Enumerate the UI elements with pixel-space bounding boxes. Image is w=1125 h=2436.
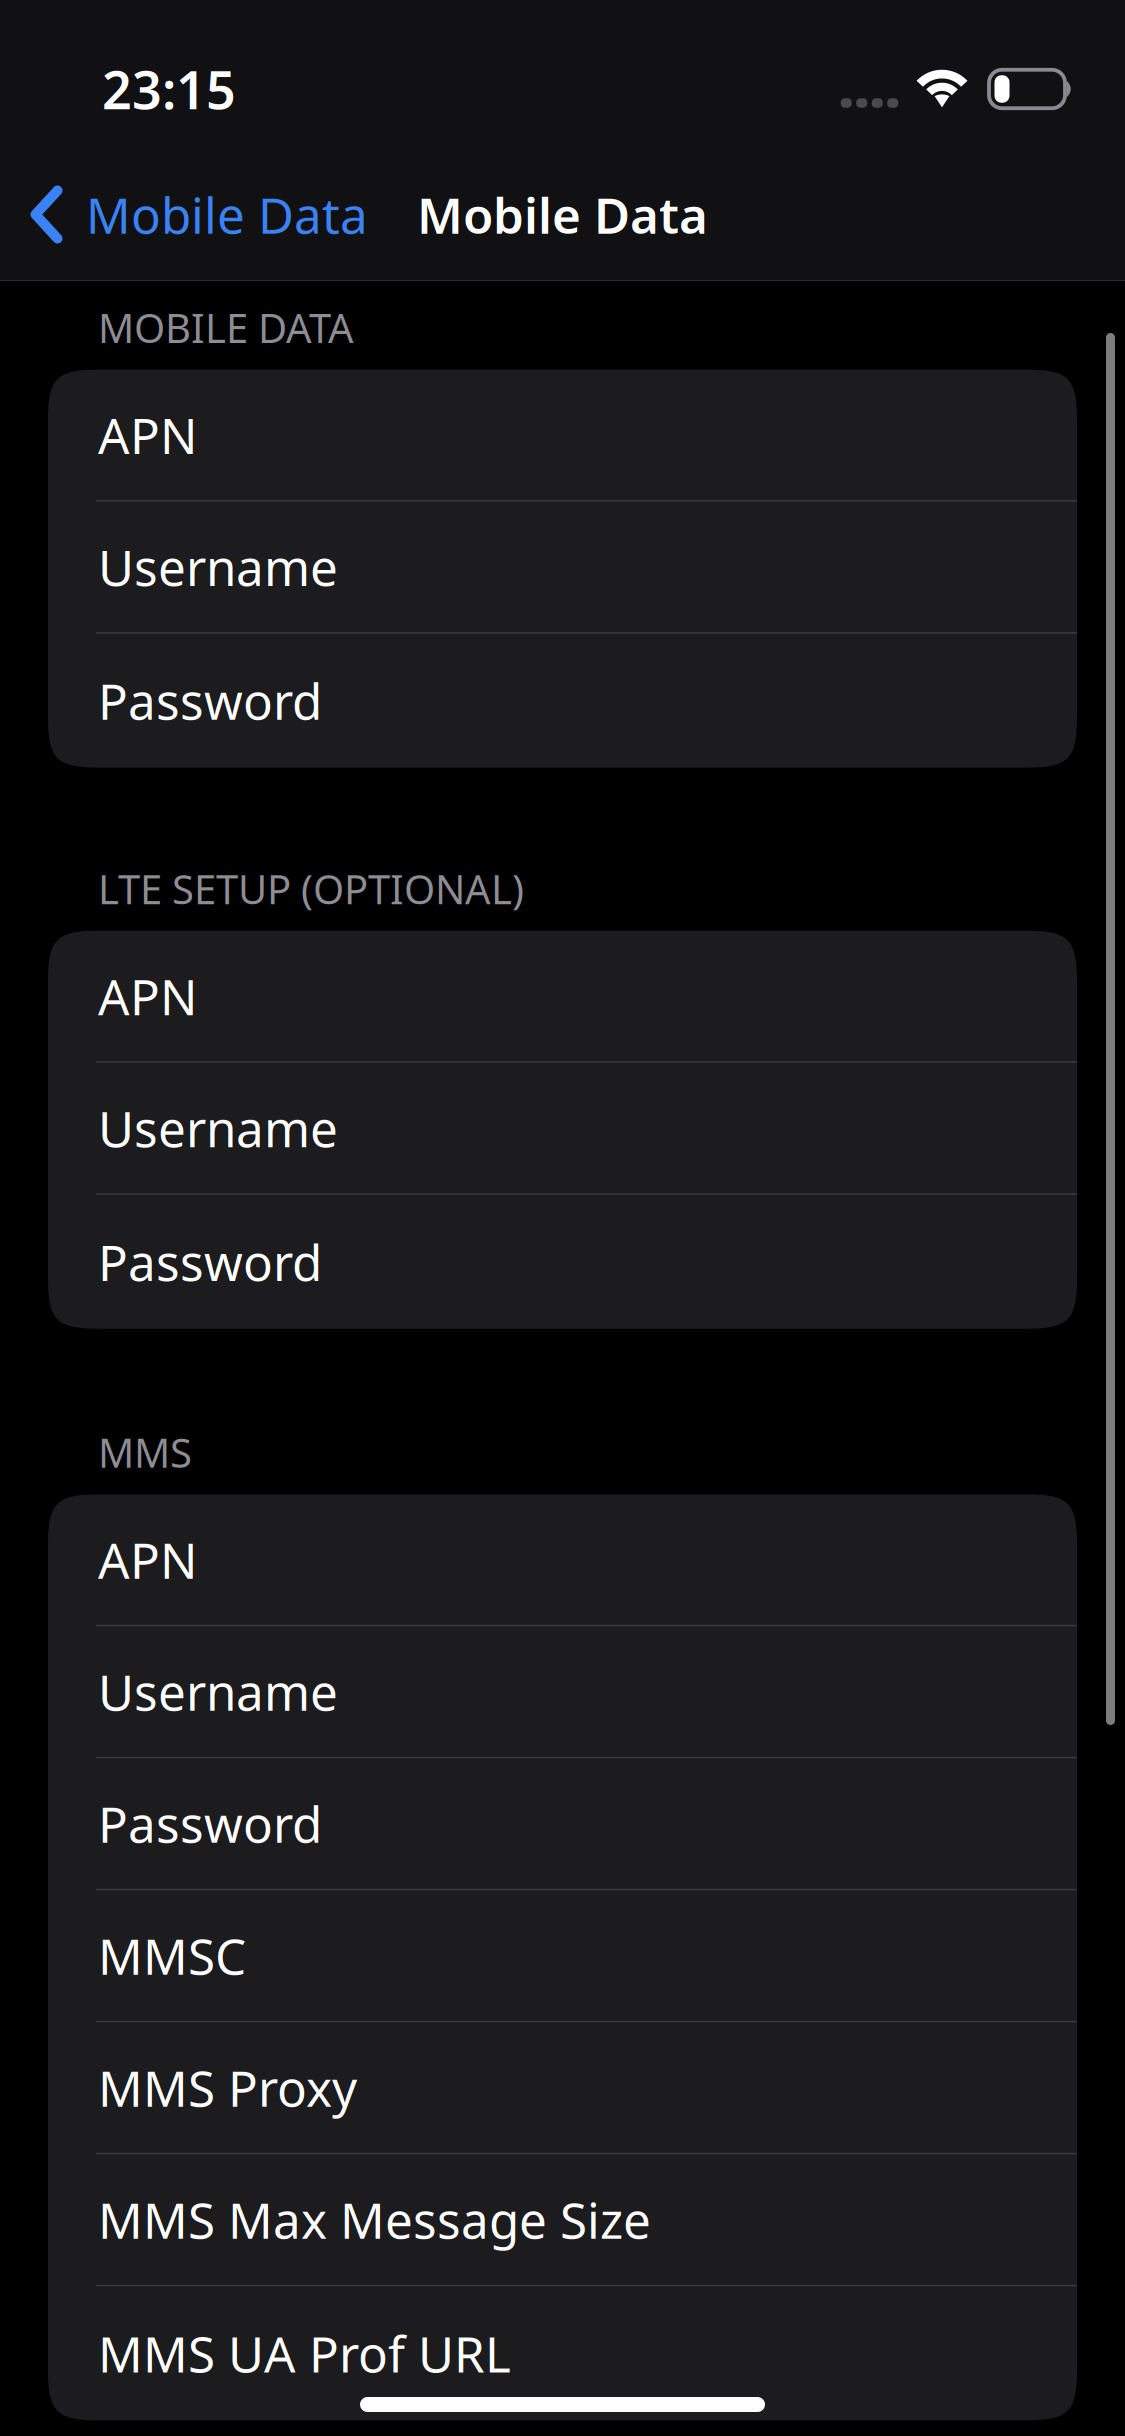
button[interactable]: APN bbox=[48, 931, 1077, 1063]
staticText: MMS UA Prof URL bbox=[98, 2321, 511, 2386]
button[interactable]: MMS Max Message Size bbox=[48, 2154, 1077, 2286]
staticText: Username bbox=[98, 534, 338, 600]
staticText: MMSC bbox=[98, 1923, 246, 1988]
button[interactable]: Password bbox=[48, 1195, 1077, 1329]
staticText: Mobile Data bbox=[417, 182, 708, 247]
staticText: APN bbox=[98, 402, 197, 468]
staticText: MOBILE DATA bbox=[98, 301, 354, 354]
staticText: 23:15 bbox=[102, 54, 236, 124]
staticText: Password bbox=[98, 1229, 322, 1294]
staticText: MMS Proxy bbox=[98, 2055, 357, 2120]
staticText: Password bbox=[98, 668, 322, 733]
staticText: Mobile Data bbox=[86, 182, 368, 247]
button[interactable]: Back to Mobile Data bbox=[0, 149, 392, 280]
button[interactable]: Username bbox=[48, 502, 1077, 634]
button[interactable]: APN bbox=[48, 1494, 1077, 1626]
button[interactable]: APN bbox=[48, 370, 1077, 502]
button[interactable]: MMSC bbox=[48, 1890, 1077, 2022]
staticText: MMS Max Message Size bbox=[98, 2187, 651, 2252]
staticText: Username bbox=[98, 1095, 338, 1161]
staticText: MMS bbox=[98, 1426, 192, 1479]
staticText: LTE SETUP (OPTIONAL) bbox=[98, 862, 524, 915]
button[interactable]: MMS UA Prof URL bbox=[48, 2286, 1077, 2420]
staticText: Username bbox=[98, 1659, 338, 1724]
staticText: APN bbox=[98, 963, 197, 1029]
staticText: APN bbox=[98, 1527, 197, 1592]
button[interactable]: Username bbox=[48, 1063, 1077, 1195]
button[interactable]: Username bbox=[48, 1626, 1077, 1758]
button[interactable]: MMS Proxy bbox=[48, 2022, 1077, 2154]
button[interactable]: Password bbox=[48, 634, 1077, 768]
staticText: Password bbox=[98, 1791, 322, 1856]
button[interactable]: Password bbox=[48, 1758, 1077, 1890]
